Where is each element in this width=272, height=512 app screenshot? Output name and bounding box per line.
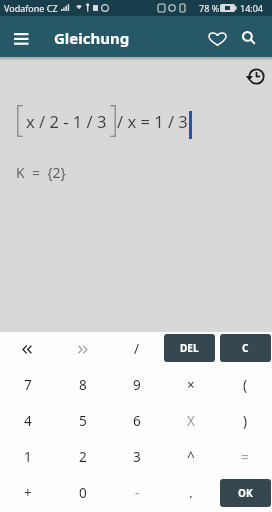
staticText: .	[189, 484, 193, 502]
staticText: X	[187, 412, 195, 430]
button[interactable]: ×	[164, 368, 218, 404]
button[interactable]: 8	[55, 368, 110, 404]
button[interactable]	[200, 16, 234, 57]
staticText: C	[242, 341, 249, 355]
button[interactable]	[234, 16, 272, 57]
staticText: OK	[238, 486, 253, 500]
button[interactable]: 2	[55, 440, 110, 476]
button[interactable]	[0, 16, 42, 57]
staticText: 5	[79, 412, 87, 430]
button[interactable]: 4	[0, 404, 55, 440]
staticText: Gleichung	[54, 28, 130, 48]
button[interactable]: C	[218, 332, 272, 368]
staticText: x / 2 - 1 / 3	[26, 110, 107, 132]
button[interactable]: /	[110, 332, 164, 368]
staticText: 1	[24, 448, 32, 466]
staticText: /	[134, 340, 140, 358]
staticText: (	[243, 376, 248, 394]
staticText: -	[135, 484, 140, 502]
staticText: Vodafone CZ	[4, 2, 58, 14]
button[interactable]: 0	[55, 476, 110, 512]
staticText: DEL	[180, 341, 199, 355]
staticText: =	[241, 448, 249, 466]
staticText: ^	[187, 448, 195, 466]
button[interactable]	[246, 67, 266, 87]
button[interactable]: X	[164, 404, 218, 440]
button[interactable]: -	[110, 476, 164, 512]
staticText: )	[243, 412, 248, 430]
button[interactable]: )	[218, 404, 272, 440]
button[interactable]: 7	[0, 368, 55, 404]
staticText: 9	[133, 376, 141, 394]
button[interactable]	[0, 332, 55, 368]
staticText: 6	[133, 412, 141, 430]
button[interactable]: +	[0, 476, 55, 512]
button[interactable]: ^	[164, 440, 218, 476]
staticText: 2	[79, 448, 87, 466]
staticText: / x = 1 / 3	[117, 110, 188, 132]
staticText: 14:04	[240, 2, 264, 14]
staticText: 78 %	[199, 2, 220, 14]
button[interactable]: 6	[110, 404, 164, 440]
staticText: K = {2}	[16, 163, 66, 182]
button[interactable]: DEL	[164, 332, 218, 368]
staticText: 4	[24, 412, 32, 430]
button[interactable]: 1	[0, 440, 55, 476]
staticText: ×	[187, 376, 195, 394]
staticText: 0	[79, 484, 87, 502]
button[interactable]	[55, 332, 110, 368]
staticText: 8	[79, 376, 87, 394]
button[interactable]: 5	[55, 404, 110, 440]
button[interactable]: (	[218, 368, 272, 404]
button[interactable]: OK	[218, 476, 272, 512]
staticText: +	[24, 484, 32, 502]
button[interactable]: =	[218, 440, 272, 476]
button[interactable]: 3	[110, 440, 164, 476]
staticText: 3	[133, 448, 141, 466]
button[interactable]: 9	[110, 368, 164, 404]
button[interactable]: .	[164, 476, 218, 512]
staticText: 7	[24, 376, 32, 394]
